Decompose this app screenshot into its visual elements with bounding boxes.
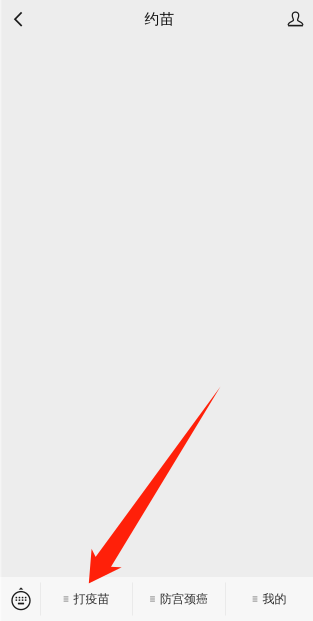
- staticText: 约苗: [144, 10, 174, 28]
- button[interactable]: Profile: [274, 0, 313, 38]
- button[interactable]: Keyboard: [0, 577, 40, 621]
- button[interactable]: 打疫苗: [41, 577, 132, 621]
- button[interactable]: 我的: [226, 577, 313, 621]
- staticText: 我的: [262, 592, 286, 606]
- button[interactable]: Back: [0, 0, 44, 38]
- staticText: 打疫苗: [73, 592, 109, 606]
- button[interactable]: 防宫颈癌: [133, 577, 225, 621]
- staticText: 防宫颈癌: [160, 592, 208, 606]
